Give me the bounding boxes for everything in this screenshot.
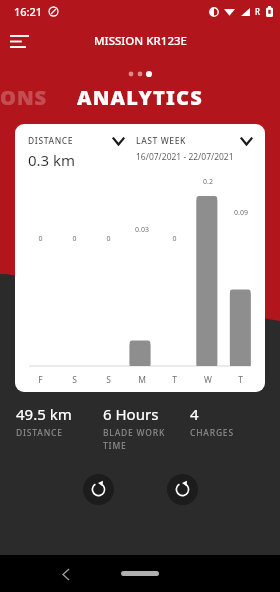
staticText: S: [106, 374, 111, 386]
staticText: DISTANCE: [16, 427, 63, 439]
staticText: DISTANCE: [28, 135, 74, 147]
button[interactable]: LAST WEEK: [136, 135, 252, 147]
staticText: 49.5 km: [16, 404, 72, 424]
button[interactable]: Reset distance: [83, 474, 114, 505]
staticText: ONS: [0, 84, 48, 110]
staticText: 16/07/2021 - 22/07/2021: [136, 151, 234, 163]
staticText: R: [255, 6, 261, 17]
button[interactable]: Reset blade time: [167, 474, 198, 505]
staticText: 0: [38, 234, 43, 244]
staticText: 0: [106, 234, 111, 244]
staticText: T: [172, 374, 177, 386]
staticText: CHARGES: [190, 427, 234, 439]
button[interactable]: DISTANCE: [28, 135, 136, 147]
button[interactable]: Menu: [0, 22, 38, 60]
staticText: ANALYTICS: [77, 84, 203, 110]
staticText: BLADE WORK TIME: [103, 427, 190, 452]
button[interactable]: Home: [121, 571, 159, 576]
staticText: 0.3 km: [28, 150, 76, 170]
button[interactable]: Back: [51, 559, 81, 589]
staticText: S: [72, 374, 77, 386]
staticText: 0.2: [203, 177, 213, 187]
staticText: 0.03: [135, 225, 149, 235]
staticText: 0.09: [234, 208, 248, 218]
staticText: MISSION KR123E: [94, 33, 187, 49]
staticText: 4: [190, 404, 199, 424]
staticText: 0: [72, 234, 77, 244]
staticText: LAST WEEK: [136, 135, 187, 147]
staticText: 6 Hours: [103, 404, 159, 424]
staticText: 16:21: [14, 4, 43, 19]
staticText: F: [38, 374, 43, 386]
staticText: M: [138, 374, 146, 386]
staticText: 0: [172, 234, 177, 244]
staticText: W: [204, 374, 212, 386]
staticText: T: [238, 374, 243, 386]
